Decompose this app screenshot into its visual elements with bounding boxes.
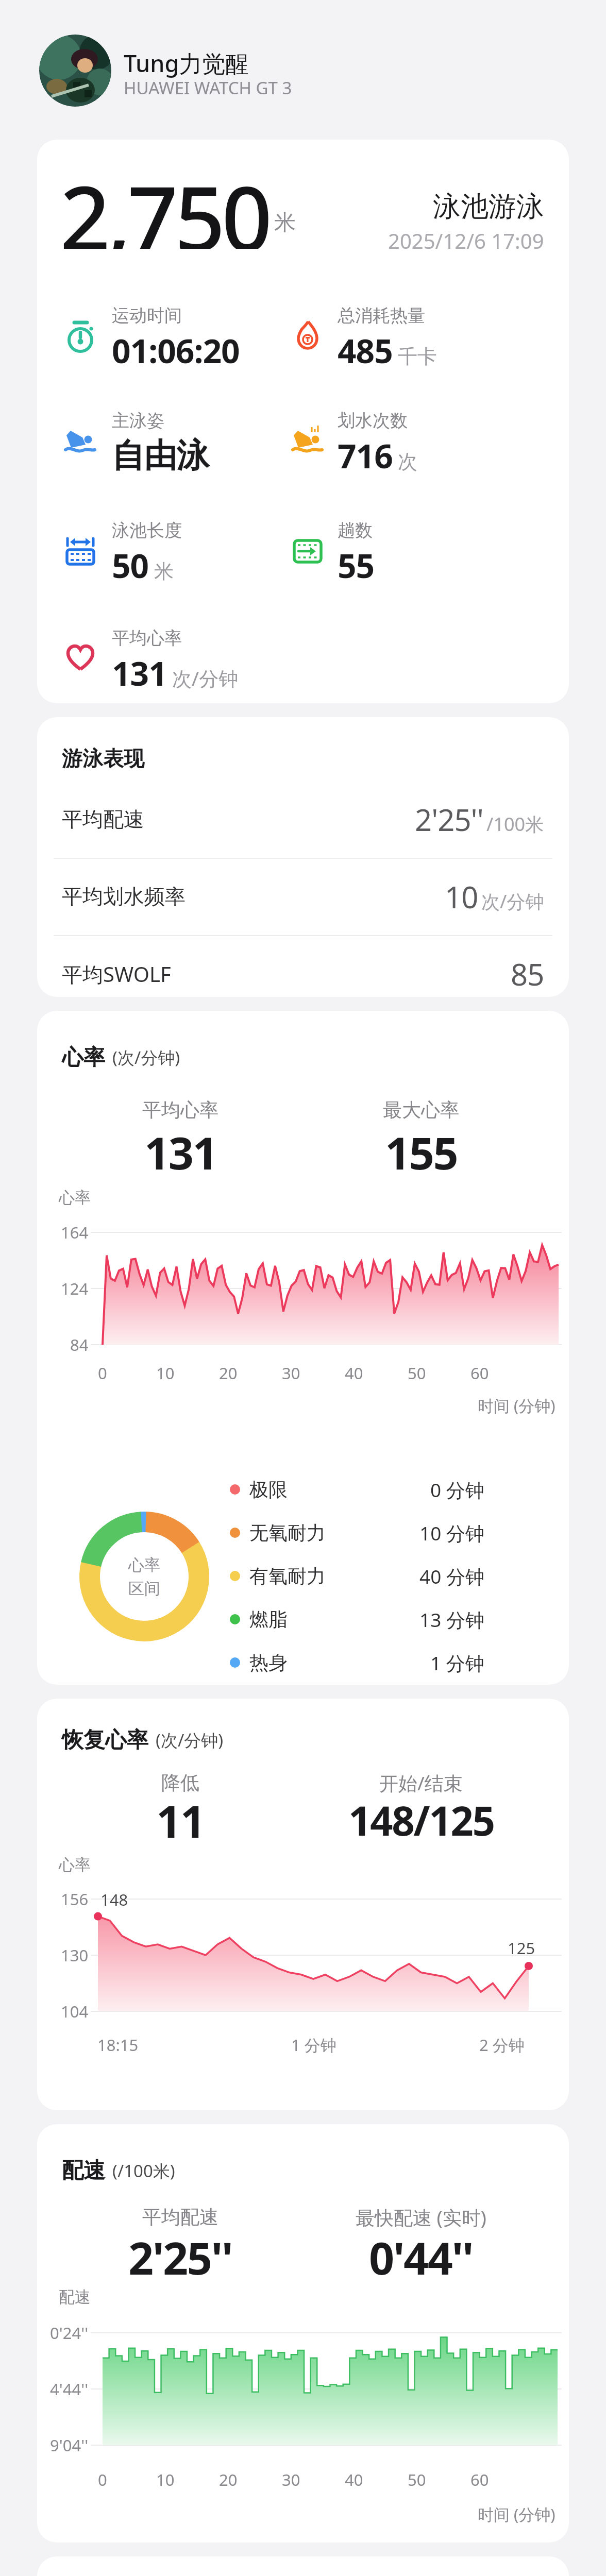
staticText: 次/分钟 [172,665,239,691]
staticText: 趟数 [338,519,373,541]
staticText: 0 [98,2469,107,2490]
staticText: 游泳表现 [62,745,144,771]
staticText: (次/分钟) [112,1046,180,1069]
staticText: (次/分钟) [156,1728,224,1752]
staticText: 次/分钟 [481,889,544,914]
staticText: 18:15 [97,2034,139,2056]
staticText: 最快配速 (实时) [356,2204,486,2230]
button[interactable]: 心率 [37,1011,569,1685]
staticText: 11 [156,1790,205,1851]
button[interactable] [39,35,111,107]
staticText: 164 [61,1222,89,1243]
staticText: 10 [156,1362,175,1384]
staticText: 130 [61,1944,89,1966]
staticText: 20 [219,1362,238,1384]
staticText: 40 [345,2469,363,2490]
staticText: (/100米) [112,2159,175,2182]
staticText: 米 [274,209,296,236]
staticText: HUAWEI WATCH GT 3 [124,76,292,99]
staticText: 主泳姿 [112,410,164,432]
staticText: 泳池游泳 [433,189,544,224]
staticText: 20 [219,2469,238,2490]
staticText: Tung力觉醒 [124,47,249,79]
staticText: 配速 [62,2157,105,2184]
staticText: 心率 [128,1555,160,1575]
staticText: 155 [385,1122,458,1182]
staticText: 2,750 [60,156,269,249]
staticText: 平均配速 [62,806,144,832]
staticText: 2025/12/6 17:09 [388,227,544,255]
staticText: 0 分钟 [430,1477,484,1503]
button[interactable]: 2,750 [37,140,569,703]
staticText: 4'44'' [50,2378,89,2400]
staticText: 自由泳 [112,435,209,477]
staticText: 时间 (分钟) [478,2503,555,2525]
staticText: 1 分钟 [430,1650,484,1676]
staticText: 恢复心率 [62,1726,148,1754]
staticText: 燃脂 [249,1607,288,1632]
staticText: 124 [61,1278,89,1299]
staticText: 有氧耐力 [249,1564,326,1588]
staticText: 50 [112,543,149,588]
staticText: 148/125 [348,1793,494,1848]
staticText: 0 [98,1362,107,1384]
staticText: 60 [470,1362,489,1384]
staticText: 总消耗热量 [338,304,425,327]
button[interactable]: 恢复心率 [37,1699,569,2110]
staticText: 30 [282,2469,300,2490]
staticText: 156 [61,1888,89,1910]
staticText: 131 [144,1122,217,1182]
staticText: 次 [398,449,417,474]
staticText: 60 [470,2469,489,2490]
staticText: 时间 (分钟) [478,1395,555,1416]
staticText: /100米 [486,811,544,837]
staticText: 716 [338,433,393,478]
staticText: 9'04'' [50,2434,89,2456]
staticText: 开始/结束 [379,1770,463,1796]
staticText: 心率 [62,1044,105,1071]
button[interactable]: 配速 [37,2124,569,2543]
staticText: 40 [345,1362,363,1384]
staticText: 0'44'' [369,2227,473,2287]
staticText: 降低 [161,1771,199,1795]
staticText: 2'25'' [415,799,483,840]
staticText: 最大心率 [383,1098,459,1122]
staticText: 划水次数 [338,410,408,432]
staticText: 配速 [59,2287,91,2307]
staticText: 区间 [128,1579,160,1599]
staticText: 104 [61,2001,89,2022]
staticText: 30 [282,1362,300,1384]
staticText: 40 分钟 [419,1563,484,1589]
staticText: 千卡 [398,344,437,369]
staticText: 01:06:20 [112,328,240,373]
staticText: 85 [511,954,544,994]
staticText: 泳池长度 [112,519,182,541]
staticText: 148 [100,1889,128,1910]
staticText: 运动时间 [112,304,182,327]
staticText: 10 分钟 [419,1520,484,1546]
staticText: 125 [508,1937,535,1959]
staticText: 平均心率 [142,1098,218,1122]
staticText: 无氧耐力 [249,1521,326,1545]
staticText: 心率 [59,1188,91,1208]
staticText: 485 [338,328,393,373]
staticText: 10 [445,876,478,917]
staticText: 心率 [59,1855,91,1875]
staticText: 50 [408,2469,426,2490]
staticText: 10 [156,2469,175,2490]
staticText: 平均SWOLF [62,960,171,988]
staticText: 平均划水频率 [62,884,186,909]
staticText: 热身 [249,1651,288,1675]
staticText: 2'25'' [128,2227,232,2287]
staticText: 2 分钟 [479,2034,525,2056]
staticText: 50 [408,1362,426,1384]
staticText: 1 分钟 [291,2034,336,2056]
staticText: 0'24'' [50,2322,89,2344]
staticText: 131 [112,651,167,696]
staticText: 平均心率 [112,627,182,649]
staticText: 平均配速 [142,2205,218,2229]
staticText: 55 [338,543,375,588]
staticText: 13 分钟 [419,1606,484,1633]
button[interactable]: 游泳表现 [37,717,569,997]
